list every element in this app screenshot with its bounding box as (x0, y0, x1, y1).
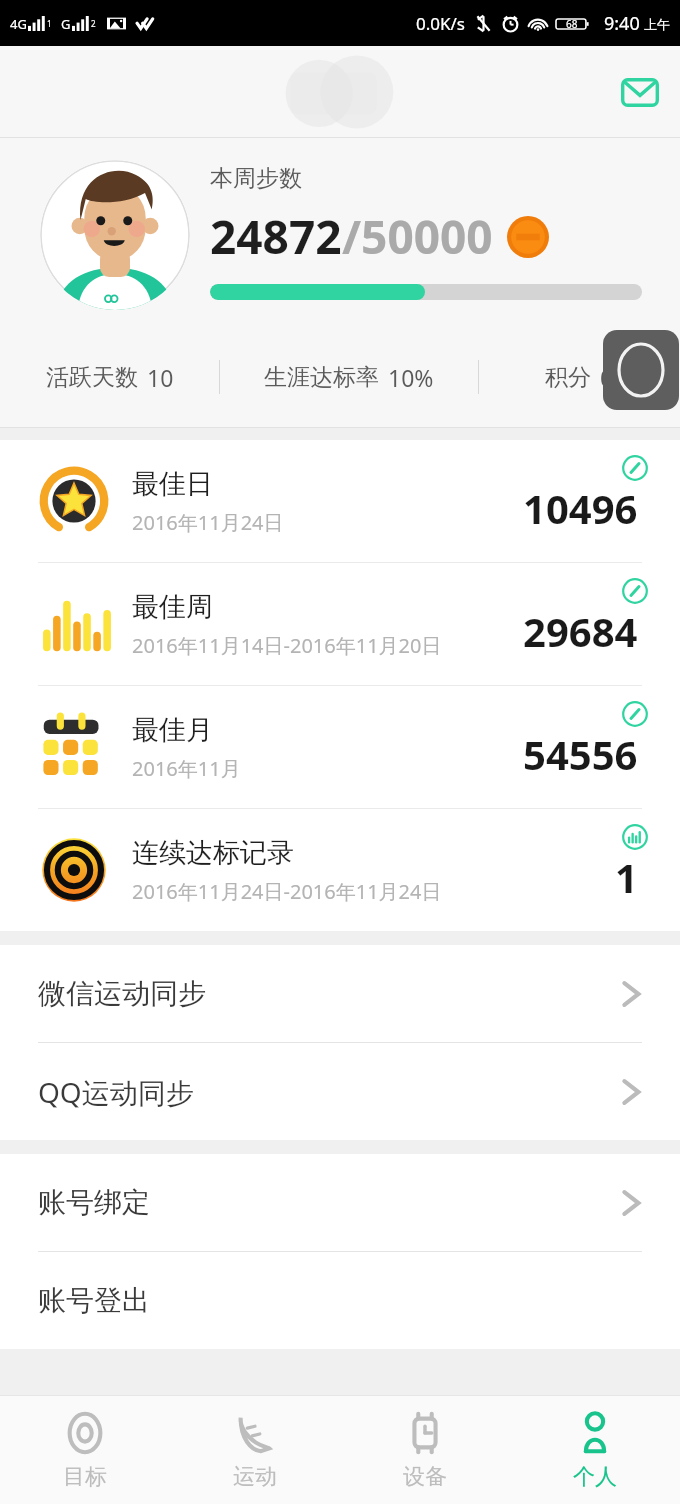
staticText: 连续达标记录 (132, 836, 294, 870)
staticText: 个人 (573, 1463, 617, 1491)
button[interactable]: Messages (614, 66, 666, 118)
staticText: 2016年11月 (132, 755, 241, 782)
staticText: 10% (388, 362, 434, 393)
button[interactable]: 设备 (340, 1396, 510, 1504)
button[interactable]: QQ运动同步 (0, 1043, 680, 1140)
button[interactable]: 最佳日 (0, 440, 680, 562)
staticText: 最佳月 (132, 713, 213, 747)
staticText: 10496 (523, 481, 638, 535)
staticText: 29684 (523, 604, 638, 658)
button[interactable]: 账号绑定 (0, 1154, 680, 1251)
button[interactable]: 运动 (170, 1396, 340, 1504)
staticText: 最佳日 (132, 467, 213, 501)
button[interactable]: 活跃天数 (0, 362, 219, 393)
staticText: 2 (91, 18, 96, 29)
button[interactable]: 个人 (510, 1396, 680, 1504)
button[interactable]: 微信运动同步 (0, 945, 680, 1042)
staticText: 运动 (233, 1463, 277, 1491)
staticText: 微信运动同步 (38, 976, 206, 1011)
staticText: 账号绑定 (38, 1185, 150, 1220)
staticText: /50000 (342, 205, 493, 268)
staticText: 2016年11月24日-2016年11月24日 (132, 878, 442, 905)
button[interactable]: 积分 (479, 362, 680, 393)
button[interactable]: 最佳月 (0, 686, 680, 808)
button[interactable]: Floating assistive touch (603, 330, 679, 410)
staticText: 9:40 (604, 11, 640, 36)
staticText: 4G (10, 15, 27, 33)
button[interactable]: 目标 (0, 1396, 170, 1504)
staticText: 0.0K/s (416, 12, 465, 35)
staticText: 最佳周 (132, 590, 213, 624)
staticText: 1 (615, 850, 638, 904)
button[interactable]: 生涯达标率 (220, 362, 478, 393)
staticText: 2016年11月14日-2016年11月20日 (132, 632, 442, 659)
staticText: 24872 (210, 205, 342, 268)
staticText: 1 (47, 18, 52, 29)
staticText: 10 (147, 362, 174, 393)
staticText: 生涯达标率 (264, 363, 379, 392)
button[interactable]: Profile avatar (40, 160, 190, 310)
button[interactable]: 连续达标记录 (0, 809, 680, 931)
staticText: 本周步数 (210, 164, 302, 193)
staticText: 54556 (523, 727, 638, 781)
staticText: 上午 (644, 16, 670, 32)
staticText: 活跃天数 (46, 363, 138, 392)
staticText: 设备 (403, 1463, 447, 1491)
staticText: 积分 (545, 363, 591, 392)
staticText: 账号登出 (38, 1283, 150, 1318)
staticText: 0 (600, 362, 614, 393)
button[interactable]: 最佳周 (0, 563, 680, 685)
button[interactable]: 账号登出 (0, 1252, 680, 1349)
staticText: 2016年11月24日 (132, 509, 284, 536)
staticText: G (61, 15, 71, 33)
staticText: QQ运动同步 (38, 1073, 194, 1111)
staticText: 68 (566, 17, 578, 31)
staticText: 目标 (63, 1463, 107, 1491)
